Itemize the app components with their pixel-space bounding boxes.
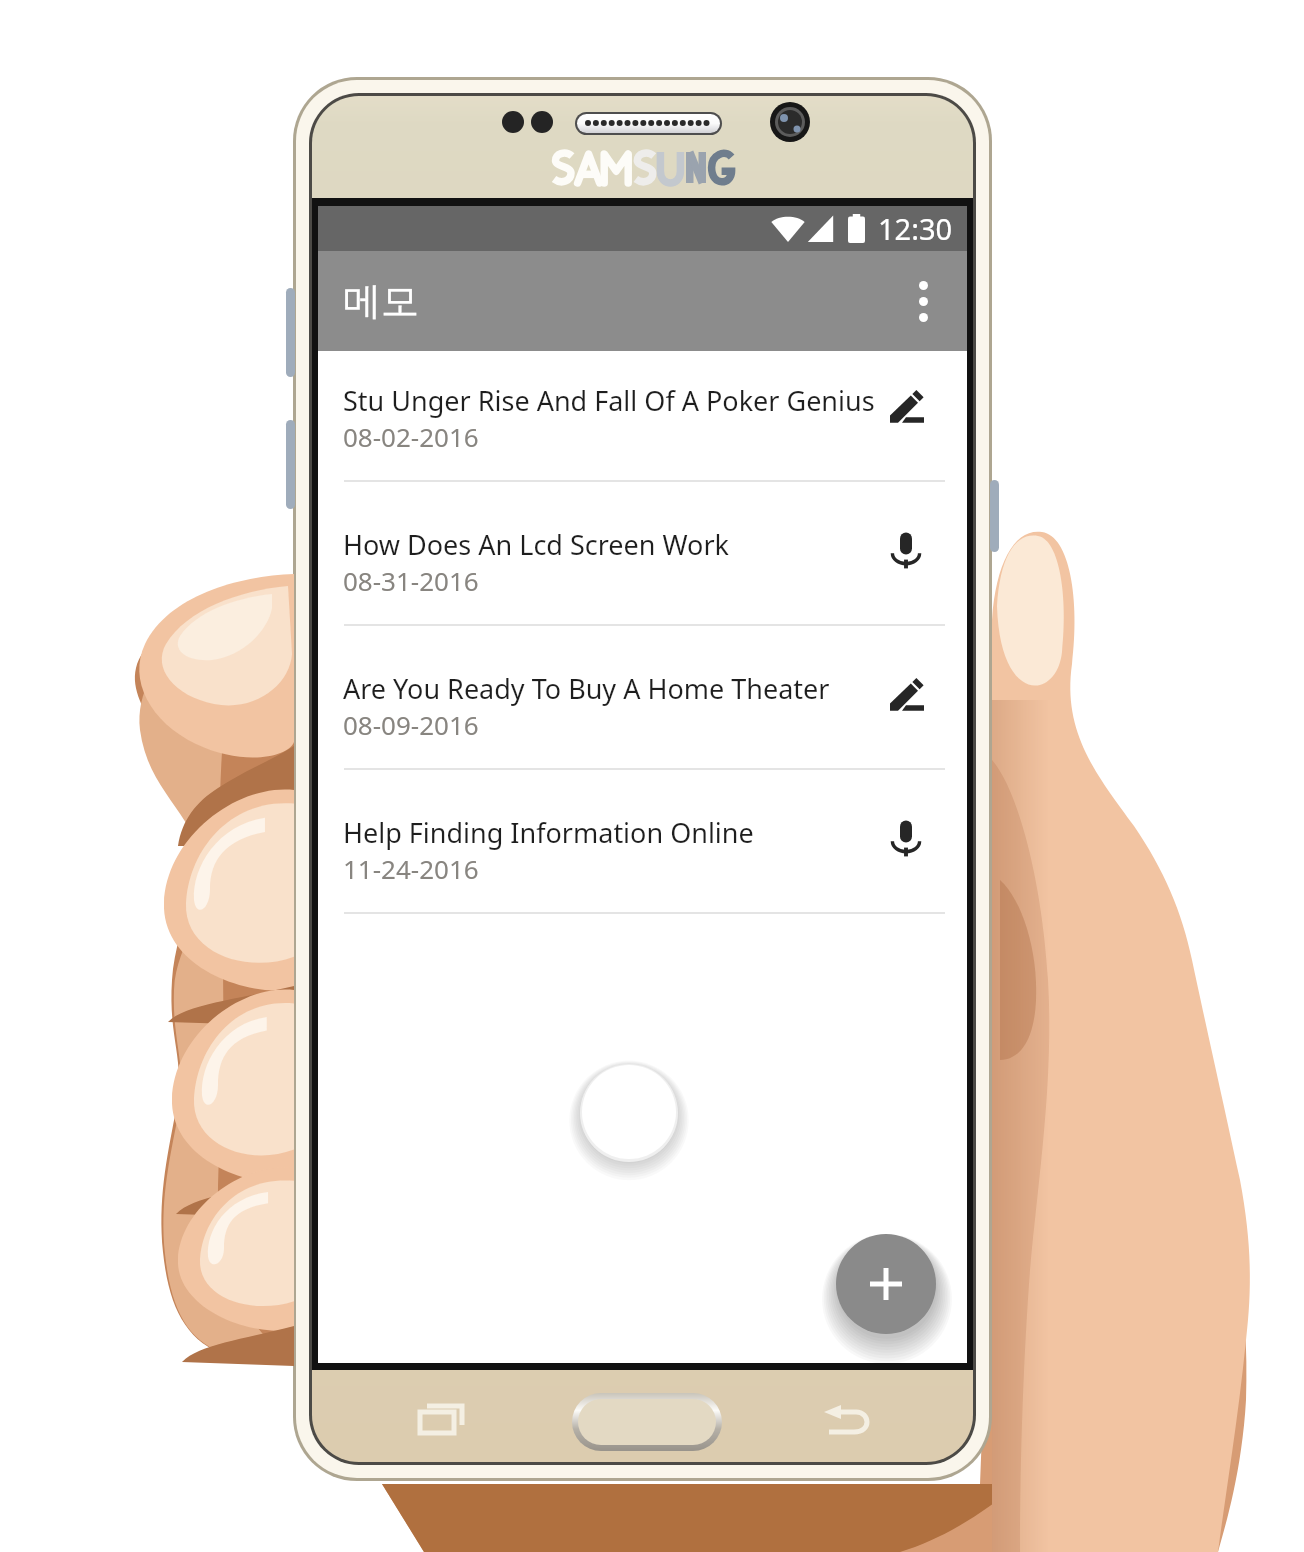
staticText: 08-02-2016	[343, 419, 479, 454]
staticText: Help Finding Information Online	[343, 814, 754, 851]
staticText: 11-24-2016	[343, 851, 479, 886]
button[interactable]: Are You Ready To Buy A Home Theater	[318, 626, 967, 770]
button[interactable]: How Does An Lcd Screen Work	[318, 482, 967, 626]
staticText: 08-31-2016	[343, 563, 479, 598]
button[interactable]: Voice note	[884, 816, 928, 860]
button[interactable]: Voice note	[884, 528, 928, 572]
button[interactable]: Stu Unger Rise And Fall Of A Poker Geniu…	[318, 351, 967, 482]
staticText: Stu Unger Rise And Fall Of A Poker Geniu…	[343, 382, 875, 419]
staticText: Are You Ready To Buy A Home Theater	[343, 670, 830, 707]
staticText: 08-09-2016	[343, 707, 479, 742]
button[interactable]: Edit note	[884, 384, 928, 428]
button[interactable]: More options	[895, 273, 951, 329]
staticText: 메모	[343, 277, 419, 325]
button[interactable]: Add note	[836, 1234, 936, 1334]
button[interactable]: Edit note	[884, 672, 928, 716]
staticText: How Does An Lcd Screen Work	[343, 526, 729, 563]
button[interactable]: Help Finding Information Online	[318, 770, 967, 914]
staticText: 12:30	[878, 209, 953, 248]
